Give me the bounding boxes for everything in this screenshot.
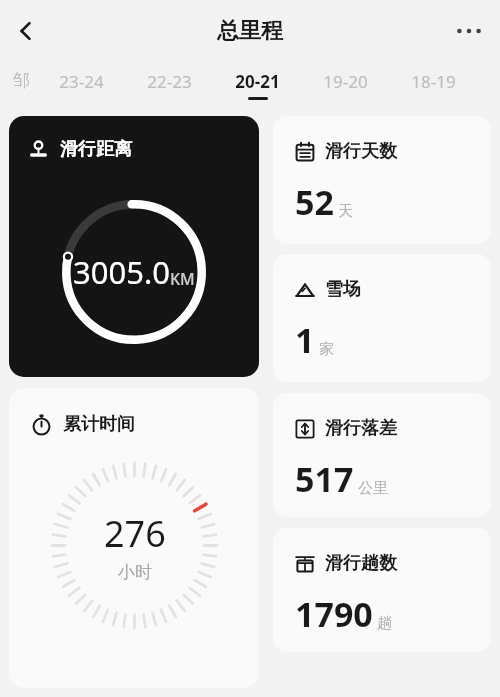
button[interactable]: Back [4, 9, 48, 53]
button[interactable]: More options [446, 8, 492, 54]
button[interactable]: 滑行天数 [273, 116, 491, 244]
staticText: 3005.0 [73, 251, 170, 293]
button[interactable]: 雪场 [273, 254, 491, 382]
staticText: 20-21 [235, 70, 280, 93]
staticText: 52 [295, 179, 334, 225]
button[interactable]: 20-21 [222, 62, 292, 106]
button[interactable]: 滑行落差 [273, 393, 491, 517]
staticText: 滑行落差 [325, 417, 397, 440]
staticText: 邹 [13, 70, 30, 91]
staticText: 滑行趟数 [325, 552, 397, 575]
button[interactable]: 22-23 [134, 62, 204, 106]
staticText: 517 [295, 456, 354, 502]
staticText: 天 [338, 202, 353, 221]
staticText: 1 [295, 317, 315, 363]
button[interactable]: 18-19 [398, 62, 468, 106]
staticText: 23-24 [59, 70, 104, 93]
staticText: 1790 [295, 591, 373, 637]
staticText: 家 [319, 340, 334, 359]
staticText: 小时 [118, 562, 152, 583]
staticText: 19-20 [323, 70, 368, 93]
staticText: 总里程 [217, 17, 283, 45]
button[interactable]: 滑行趟数 [273, 528, 491, 652]
staticText: 累计时间 [63, 413, 135, 436]
staticText: 18-19 [411, 70, 456, 93]
staticText: 雪场 [325, 278, 361, 301]
button[interactable]: 邹 [0, 62, 56, 106]
staticText: 滑行天数 [325, 140, 397, 163]
staticText: 22-23 [147, 70, 192, 93]
staticText: 276 [104, 509, 166, 558]
staticText: 趟 [377, 614, 392, 633]
button[interactable]: 19-20 [310, 62, 380, 106]
staticText: 公里 [358, 479, 388, 498]
button[interactable]: 累计时间 [9, 388, 259, 688]
staticText: KM [170, 268, 195, 290]
button[interactable]: 滑行距离 [9, 116, 259, 377]
staticText: 滑行距离 [60, 138, 132, 161]
button[interactable]: 23-24 [46, 62, 116, 106]
